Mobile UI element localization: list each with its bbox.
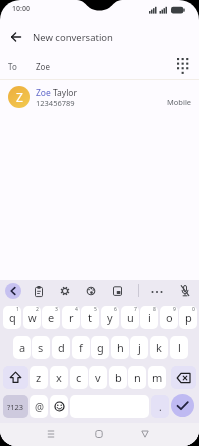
button[interactable]: y <box>101 306 119 329</box>
button[interactable] <box>82 282 100 300</box>
staticText: 8 <box>153 306 156 313</box>
button[interactable]: @ <box>30 395 48 418</box>
staticText: o <box>166 310 173 325</box>
staticText: g <box>97 340 104 355</box>
button[interactable] <box>89 424 109 444</box>
button[interactable]: u <box>121 306 139 329</box>
staticText: u <box>127 310 134 325</box>
button[interactable]: m <box>148 366 166 389</box>
button[interactable] <box>50 395 68 418</box>
button[interactable]: a <box>13 336 31 359</box>
button[interactable]: s <box>32 336 50 359</box>
button[interactable]: k <box>150 336 168 359</box>
staticText: 3 <box>55 306 58 313</box>
button[interactable]: b <box>109 366 127 389</box>
button[interactable]: d <box>52 336 70 359</box>
button[interactable] <box>135 424 155 444</box>
button[interactable] <box>6 28 26 46</box>
staticText: z <box>36 370 42 385</box>
button[interactable]: l <box>170 336 188 359</box>
staticText: r <box>69 310 74 325</box>
staticText: 4 <box>75 306 78 313</box>
staticText: y <box>107 310 113 325</box>
button[interactable]: i <box>140 306 158 329</box>
staticText: Zoe Taylor <box>36 87 78 99</box>
staticText: 0 <box>192 306 195 313</box>
staticText: Zoe <box>36 61 50 72</box>
button[interactable]: f <box>72 336 90 359</box>
button[interactable]: p <box>179 306 197 329</box>
staticText: 6 <box>114 306 117 313</box>
staticText: n <box>134 370 141 385</box>
staticText: w <box>28 310 37 325</box>
staticText: j <box>138 340 141 355</box>
staticText: @ <box>35 400 44 414</box>
staticText: e <box>48 310 55 325</box>
staticText: d <box>58 340 65 355</box>
button[interactable]: j <box>130 336 148 359</box>
button[interactable] <box>5 283 21 299</box>
button[interactable]: n <box>128 366 146 389</box>
button[interactable]: t <box>81 306 99 329</box>
button[interactable]: . <box>151 395 169 418</box>
staticText: x <box>56 370 62 385</box>
button[interactable] <box>148 282 166 300</box>
button[interactable] <box>176 282 194 300</box>
button[interactable]: c <box>70 366 88 389</box>
staticText: b <box>115 370 122 385</box>
staticText: v <box>95 370 101 385</box>
staticText: l <box>178 340 181 355</box>
button[interactable]: o <box>160 306 178 329</box>
button[interactable] <box>171 394 194 417</box>
button[interactable]: ?123 <box>3 395 28 418</box>
staticText: Z <box>16 89 23 105</box>
button[interactable] <box>108 282 126 300</box>
button[interactable] <box>3 366 28 389</box>
staticText: . <box>159 400 162 414</box>
button[interactable]: w <box>23 306 41 329</box>
staticText: q <box>9 310 16 325</box>
staticText: k <box>156 340 162 355</box>
staticText: To <box>8 61 17 72</box>
staticText: Mobile <box>167 97 192 107</box>
button[interactable]: g <box>91 336 109 359</box>
button[interactable]: q <box>3 306 21 329</box>
button[interactable] <box>56 282 74 300</box>
staticText: f <box>79 340 83 355</box>
staticText: 10:00 <box>12 4 30 14</box>
staticText: t <box>88 310 92 325</box>
staticText: p <box>185 310 192 325</box>
button[interactable]: e <box>42 306 60 329</box>
staticText: c <box>76 370 82 385</box>
button[interactable] <box>41 424 61 444</box>
button[interactable]: v <box>89 366 107 389</box>
button[interactable]: r <box>62 306 80 329</box>
staticText: 5 <box>94 306 97 313</box>
staticText: 123456789 <box>36 98 75 108</box>
button[interactable] <box>172 54 194 78</box>
staticText: New conversation <box>33 31 113 44</box>
button[interactable]: Z <box>0 82 199 114</box>
staticText: 9 <box>173 306 176 313</box>
staticText: h <box>117 340 124 355</box>
staticText: m <box>152 370 163 385</box>
staticText: ?123 <box>7 402 24 412</box>
staticText: a <box>19 340 26 355</box>
staticText: 7 <box>134 306 137 313</box>
button[interactable]: z <box>30 366 48 389</box>
staticText: 2 <box>36 306 39 313</box>
staticText: s <box>38 340 44 355</box>
staticText: 1 <box>16 306 19 313</box>
button[interactable] <box>171 366 196 389</box>
staticText: i <box>148 310 151 325</box>
button[interactable]: h <box>111 336 129 359</box>
button[interactable] <box>30 282 48 300</box>
button[interactable]: x <box>50 366 68 389</box>
